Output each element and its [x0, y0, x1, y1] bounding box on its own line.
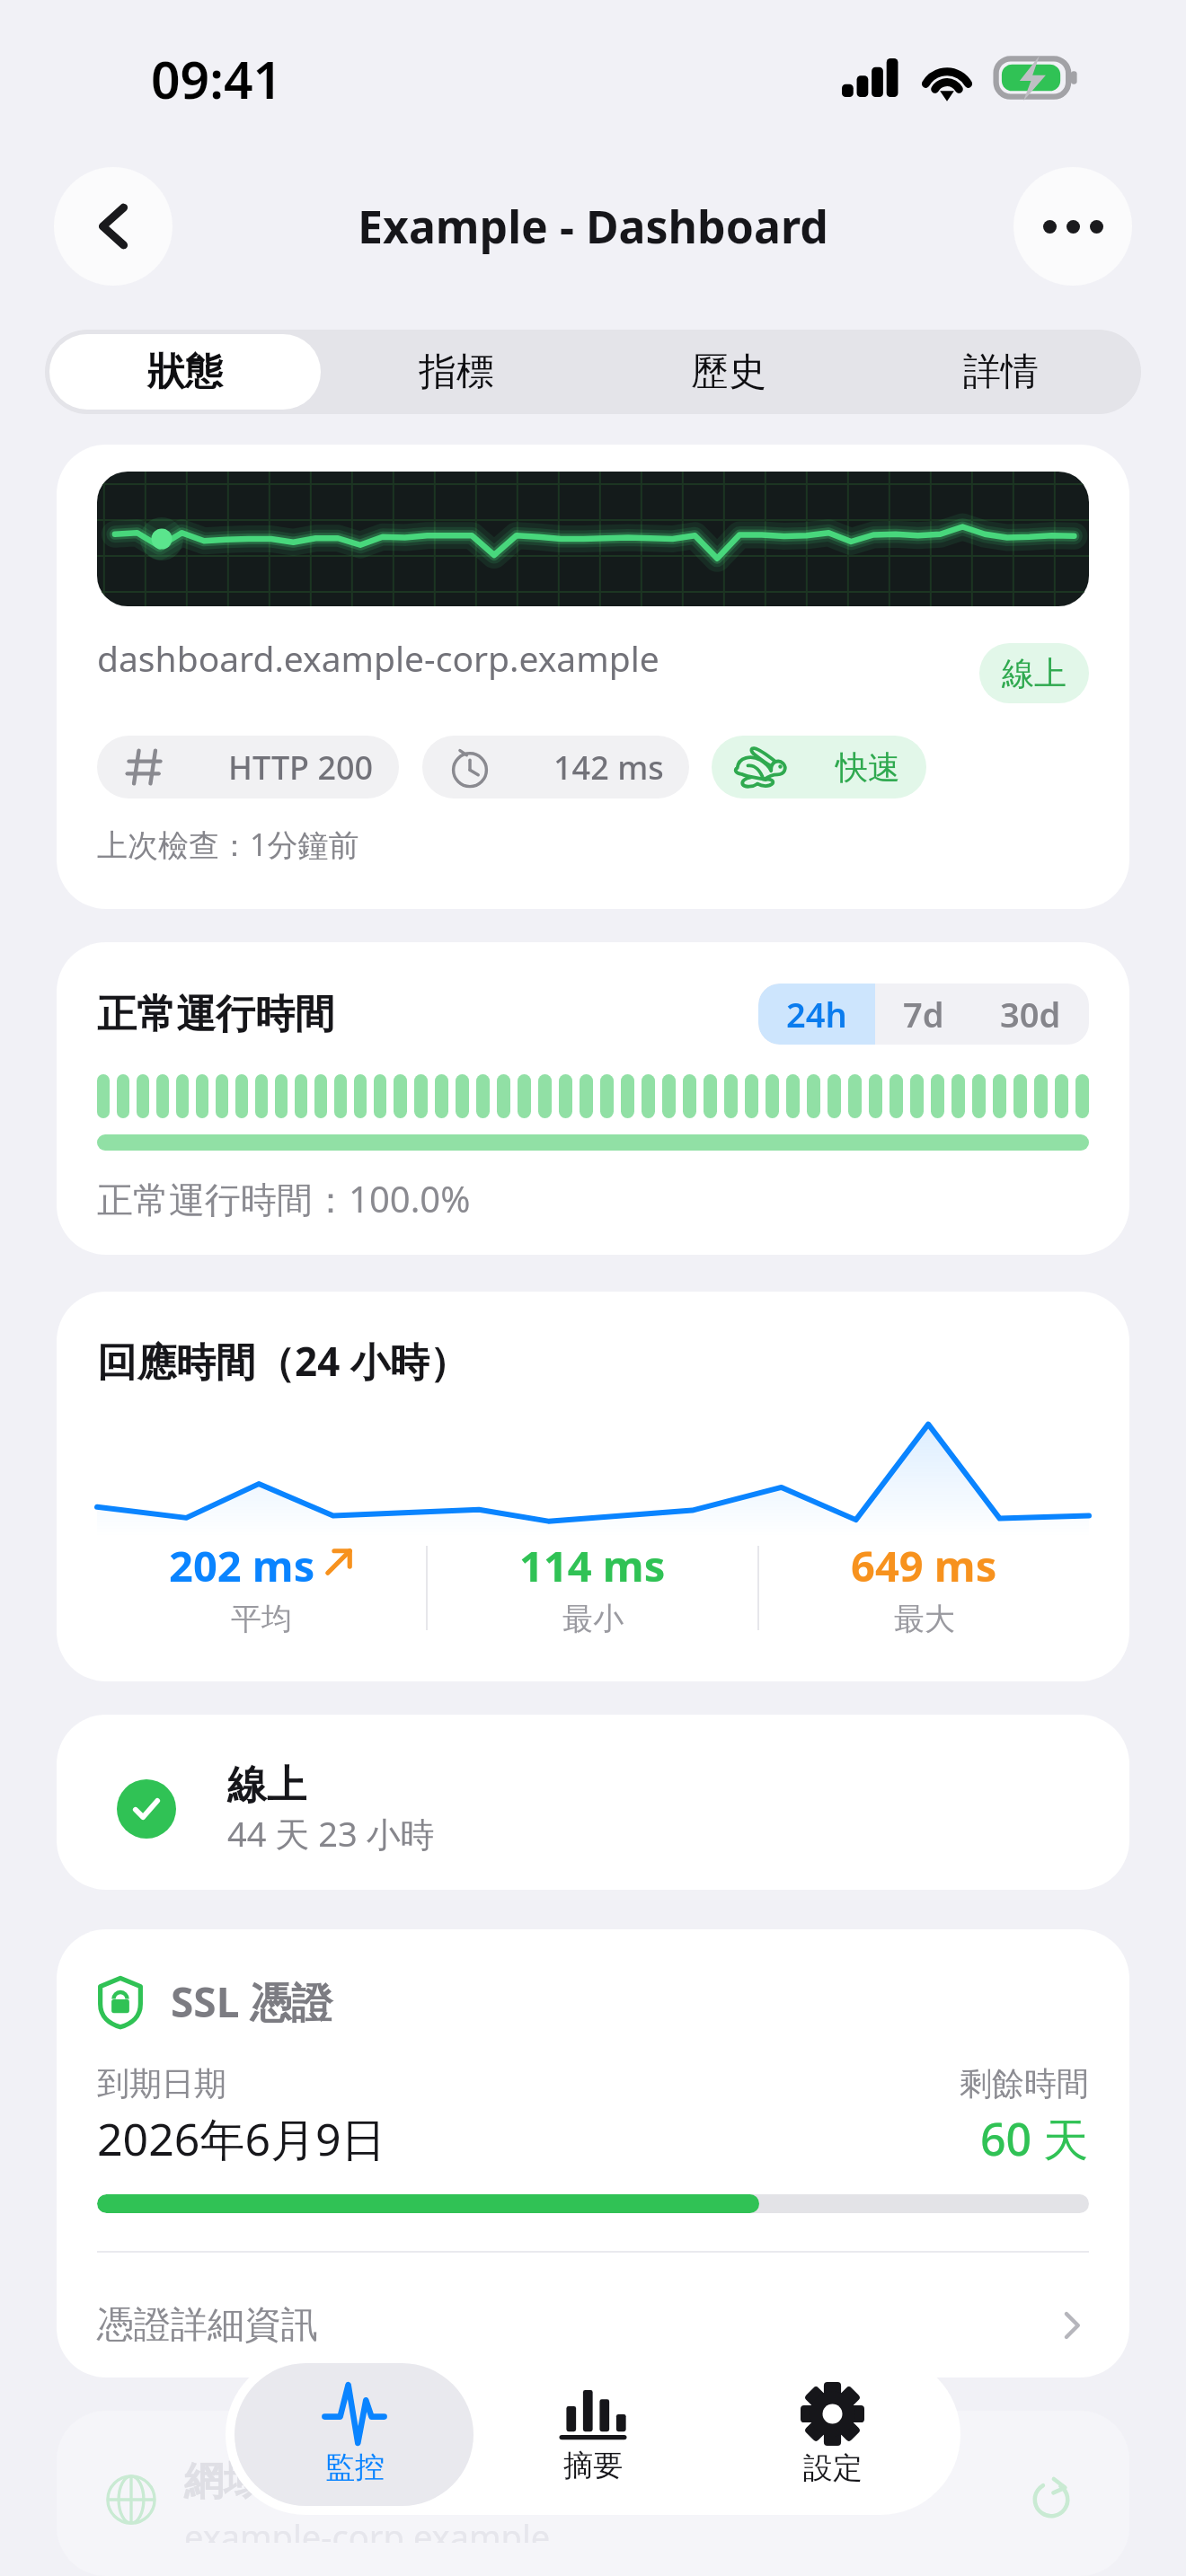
- staticText: 7d: [903, 991, 944, 1037]
- button[interactable]: 線上: [57, 1715, 1129, 1890]
- staticText: 正常運行時間：100.0%: [97, 1174, 471, 1223]
- staticText: 狀態: [147, 348, 223, 396]
- staticText: 線上: [227, 1760, 306, 1810]
- staticText: 歷史: [691, 348, 766, 396]
- button[interactable]: 監控: [235, 2363, 474, 2506]
- staticText: 09:41: [151, 44, 283, 114]
- button[interactable]: 狀態: [49, 334, 321, 410]
- staticText: 649 ms: [851, 1537, 997, 1594]
- button[interactable]: Back: [54, 167, 173, 286]
- staticText: 最大: [894, 1600, 955, 1638]
- button[interactable]: 詳情: [864, 334, 1137, 410]
- staticText: 指標: [419, 348, 494, 396]
- staticText: 摘要: [563, 2447, 623, 2484]
- button[interactable]: HTTP 200: [97, 736, 399, 798]
- staticText: 202 ms: [169, 1537, 315, 1594]
- button[interactable]: 線上: [979, 643, 1089, 703]
- staticText: 憑證詳細資訊: [97, 2302, 1055, 2349]
- button[interactable]: 指標: [321, 334, 592, 410]
- button[interactable]: 設定: [712, 2363, 951, 2506]
- staticText: dashboard.example-corp.example: [97, 634, 659, 682]
- button[interactable]: 142 ms: [422, 736, 689, 798]
- button[interactable]: 摘要: [474, 2363, 712, 2506]
- button[interactable]: 30d: [972, 984, 1089, 1045]
- button[interactable]: More options: [1013, 167, 1132, 286]
- button[interactable]: 7d: [875, 984, 972, 1045]
- staticText: 監控: [325, 2448, 385, 2486]
- staticText: 最小: [562, 1600, 624, 1638]
- staticText: 142 ms: [553, 745, 664, 790]
- staticText: 正常運行時間: [97, 990, 758, 1039]
- staticText: 60 天: [980, 2108, 1089, 2169]
- staticText: SSL 憑證: [171, 1973, 333, 2030]
- staticText: 詳情: [963, 348, 1039, 396]
- staticText: 114 ms: [519, 1537, 666, 1594]
- staticText: 44 天 23 小時: [227, 1810, 435, 1857]
- staticText: 回應時間（24 小時）: [97, 1334, 469, 1388]
- button[interactable]: 24h: [758, 984, 875, 1045]
- staticText: 網域: [184, 2457, 263, 2506]
- staticText: 剩餘時間: [960, 2063, 1089, 2104]
- staticText: 平均: [231, 1600, 292, 1638]
- staticText: 到期日期: [97, 2063, 226, 2104]
- staticText: Example - Dashboard: [358, 196, 828, 257]
- staticText: 上次檢查：1分鐘前: [97, 824, 359, 865]
- staticText: example-corp.example: [184, 2513, 551, 2543]
- staticText: 2026年6月9日: [97, 2108, 386, 2169]
- button[interactable]: 快速: [712, 736, 926, 798]
- staticText: 線上: [1002, 653, 1067, 693]
- button[interactable]: 歷史: [592, 334, 864, 410]
- staticText: 30d: [1000, 991, 1061, 1037]
- staticText: 快速: [836, 747, 900, 788]
- staticText: 設定: [803, 2449, 863, 2487]
- staticText: HTTP 200: [228, 745, 374, 790]
- staticText: 24h: [786, 991, 847, 1037]
- button[interactable]: 憑證詳細資訊: [57, 2253, 1129, 2378]
- button[interactable]: 網域: [57, 2411, 1129, 2576]
